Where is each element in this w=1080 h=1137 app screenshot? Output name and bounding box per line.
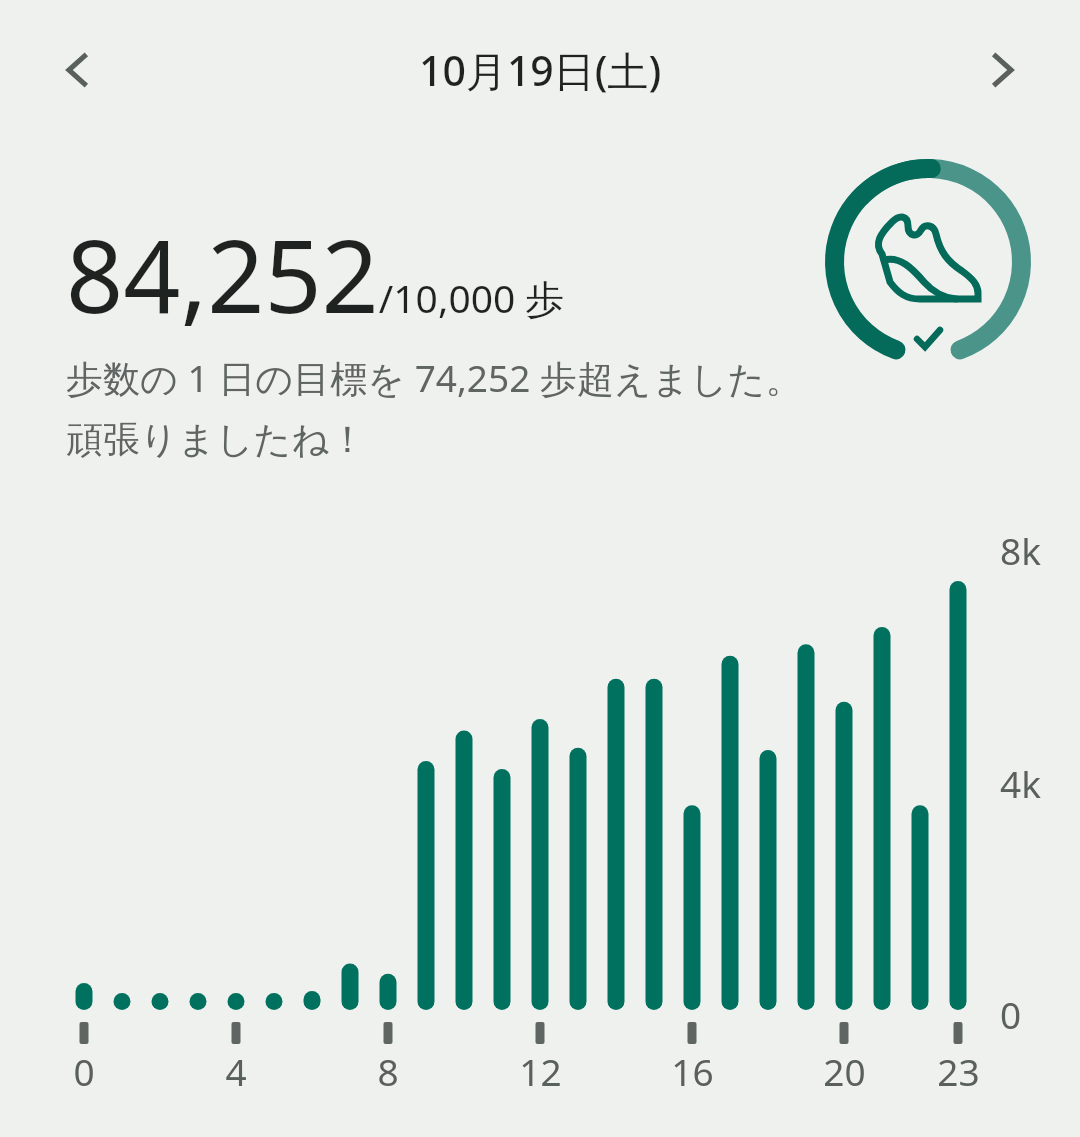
staticText: 4 bbox=[225, 1046, 247, 1096]
staticText: 23 bbox=[937, 1046, 980, 1096]
staticText: 20 bbox=[823, 1046, 866, 1096]
staticText: 10月19日(土) bbox=[419, 42, 662, 98]
staticText: 8k bbox=[1000, 525, 1041, 575]
staticText: 4k bbox=[1000, 758, 1041, 808]
button[interactable]: Step goal progress bbox=[822, 156, 1034, 368]
staticText: 84,252/10,000 歩 bbox=[66, 206, 565, 342]
staticText: 0 bbox=[73, 1046, 95, 1096]
button[interactable]: Next day bbox=[956, 25, 1046, 115]
button[interactable] bbox=[0, 0, 1080, 1137]
staticText: 歩数の 1 日の目標を 74,252 歩超えました。頑張りましたね！ bbox=[66, 352, 812, 463]
button[interactable]: Previous day bbox=[34, 25, 124, 115]
staticText: 12 bbox=[519, 1046, 562, 1096]
staticText: 0 bbox=[1000, 989, 1022, 1039]
button[interactable]: 84,252/10,000 歩 bbox=[0, 140, 1080, 490]
staticText: 16 bbox=[671, 1046, 714, 1096]
staticText: 8 bbox=[377, 1046, 399, 1096]
